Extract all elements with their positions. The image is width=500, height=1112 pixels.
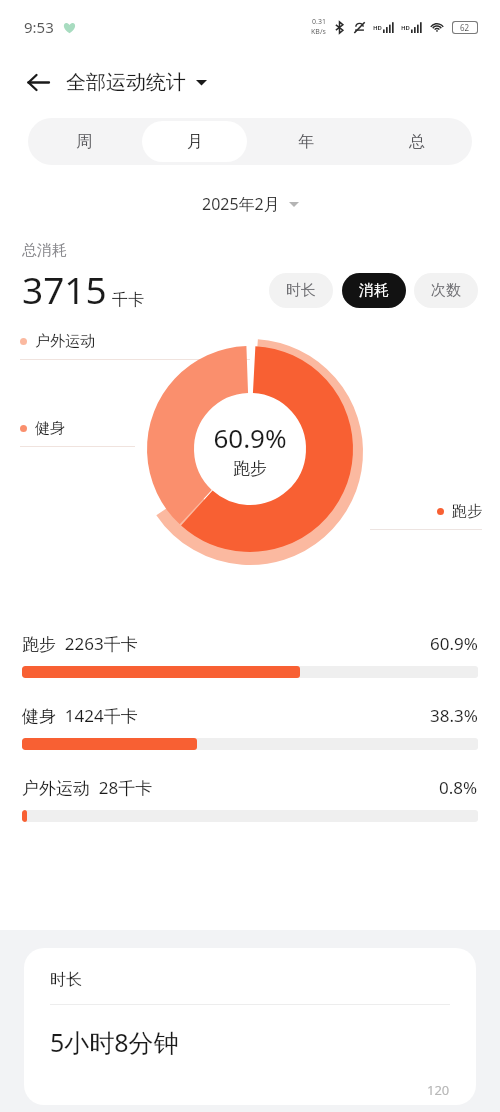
staticText: 年 xyxy=(298,132,314,152)
staticText: 消耗 xyxy=(359,281,389,300)
staticText: 62 xyxy=(460,22,470,33)
button[interactable]: 总 xyxy=(364,121,469,162)
button[interactable]: 消耗 xyxy=(342,273,406,308)
button[interactable]: 月 xyxy=(142,121,247,162)
button[interactable]: 60.9% xyxy=(143,342,357,556)
staticText: 时长 xyxy=(286,281,316,300)
staticText: 周 xyxy=(76,132,92,152)
staticText: 跑步 xyxy=(233,458,267,479)
staticText: 次数 xyxy=(431,281,461,300)
staticText: 总 xyxy=(409,132,425,152)
staticText: 跑步 2263千卡 xyxy=(22,632,138,655)
staticText: KB/s xyxy=(311,27,326,37)
staticText: 9:53 xyxy=(24,17,54,37)
staticText: 3715 xyxy=(22,264,107,314)
staticText: HD xyxy=(373,24,382,32)
staticText: 户外运动 xyxy=(35,332,95,351)
staticText: 120 xyxy=(427,1081,450,1099)
staticText: HD xyxy=(401,24,410,32)
staticText: 户外运动 28千卡 xyxy=(22,776,153,799)
button[interactable]: 时长 xyxy=(269,273,333,308)
button[interactable]: 年 xyxy=(253,121,358,162)
staticText: 60.9% xyxy=(430,632,478,655)
staticText: 总消耗 xyxy=(22,241,67,260)
button[interactable]: 户外运动 28千卡 xyxy=(0,776,500,822)
staticText: 2025年2月 xyxy=(202,193,280,215)
staticText: 千卡 xyxy=(112,290,144,310)
staticText: 健身 1424千卡 xyxy=(22,704,138,727)
button[interactable]: 次数 xyxy=(414,273,478,308)
staticText: 健身 xyxy=(35,419,65,438)
button[interactable]: 返回 xyxy=(14,58,62,106)
staticText: 60.9% xyxy=(213,420,287,455)
button[interactable]: 跑步 2263千卡 xyxy=(0,632,500,678)
staticText: 0.31 xyxy=(312,17,326,27)
button[interactable]: 2025年2月 xyxy=(202,193,299,215)
staticText: 全部运动统计 xyxy=(66,70,186,95)
button[interactable]: 周 xyxy=(31,121,136,162)
button[interactable]: 时长 xyxy=(24,948,476,1105)
staticText: 月 xyxy=(187,132,203,152)
button[interactable]: 健身 1424千卡 xyxy=(0,704,500,750)
staticText: 时长 xyxy=(50,970,82,990)
staticText: 38.3% xyxy=(430,704,478,727)
button[interactable]: 全部运动统计 xyxy=(66,70,207,95)
staticText: 5小时8分钟 xyxy=(50,1025,179,1059)
staticText: 跑步 xyxy=(452,502,482,521)
staticText: 0.8% xyxy=(439,776,478,799)
